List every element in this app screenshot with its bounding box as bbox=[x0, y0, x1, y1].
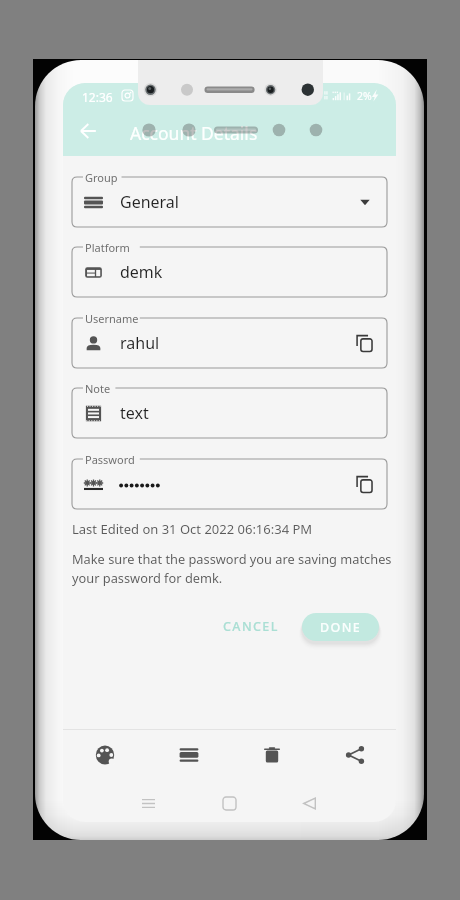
button[interactable]: Theme bbox=[63, 731, 147, 779]
button[interactable]: Share bbox=[313, 731, 396, 779]
staticText: Make sure that the password you are savi… bbox=[72, 550, 394, 587]
button[interactable]: Back bbox=[294, 788, 324, 818]
staticText: demk bbox=[120, 261, 163, 283]
button[interactable]: Back bbox=[70, 113, 106, 149]
button[interactable]: DONE bbox=[302, 613, 379, 641]
button[interactable]: Home bbox=[214, 788, 244, 818]
staticText: Account Details bbox=[130, 121, 258, 145]
staticText: DONE bbox=[320, 619, 362, 636]
staticText: CANCEL bbox=[223, 618, 279, 635]
staticText: Platform bbox=[85, 240, 130, 255]
button[interactable]: Expand group bbox=[351, 188, 379, 216]
staticText: General bbox=[120, 191, 179, 213]
staticText: text bbox=[120, 402, 149, 424]
button[interactable]: Delete bbox=[230, 731, 313, 779]
button[interactable]: Recents bbox=[133, 788, 163, 818]
button[interactable]: CANCEL bbox=[214, 611, 288, 641]
staticText: Last Edited on 31 Oct 2022 06:16:34 PM bbox=[72, 520, 313, 538]
staticText: Group bbox=[85, 170, 118, 185]
staticText: Username bbox=[85, 311, 139, 326]
staticText: 12:36 bbox=[82, 89, 113, 105]
staticText: Note bbox=[85, 381, 111, 396]
button[interactable]: Copy Password bbox=[349, 468, 381, 500]
staticText: Password bbox=[85, 452, 135, 467]
button[interactable]: Group bbox=[147, 731, 230, 779]
staticText: 2% bbox=[357, 89, 372, 103]
button[interactable]: Copy Username bbox=[349, 327, 381, 359]
staticText: rahul bbox=[120, 332, 160, 354]
